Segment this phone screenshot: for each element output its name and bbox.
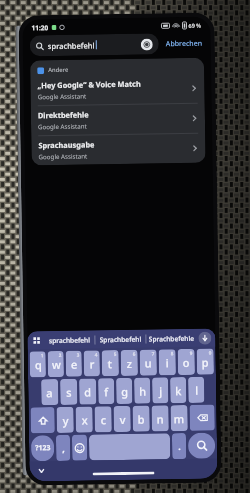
- staticText: 6: [133, 351, 136, 357]
- staticText: u: [145, 355, 152, 371]
- button[interactable]: b: [132, 406, 150, 432]
- staticText: c: [101, 412, 107, 427]
- button[interactable]: Direktbefehle: [31, 104, 205, 136]
- staticText: 8: [171, 350, 174, 356]
- button[interactable]: v: [113, 406, 131, 432]
- staticText: h: [139, 384, 146, 399]
- staticText: 0: [209, 350, 212, 356]
- staticText: sprachbefehl: [48, 335, 90, 345]
- staticText: v: [120, 412, 126, 427]
- button[interactable]: Spracheingabe: [141, 38, 153, 51]
- staticText: Google Assistant: [37, 91, 87, 100]
- staticText: 69 %: [188, 22, 201, 29]
- staticText: y: [63, 413, 69, 428]
- staticText: f: [104, 384, 108, 399]
- button[interactable]: r: [84, 350, 100, 376]
- staticText: p: [202, 355, 209, 370]
- button[interactable]: Suchen: [188, 432, 215, 459]
- staticText: s: [66, 385, 72, 400]
- button[interactable]: o: [178, 349, 195, 375]
- button[interactable]: ,: [56, 435, 70, 461]
- staticText: 11:20: [31, 23, 48, 32]
- button[interactable]: e: [66, 351, 82, 377]
- button[interactable]: k: [170, 377, 186, 403]
- staticText: a: [46, 385, 53, 400]
- staticText: Abbrechen: [166, 39, 203, 49]
- button[interactable]: Sprachbefehle: [146, 329, 197, 348]
- button[interactable]: i: [159, 349, 176, 375]
- button[interactable]: m: [170, 405, 188, 431]
- staticText: t: [108, 356, 113, 371]
- staticText: .: [178, 440, 181, 452]
- staticText: i: [166, 355, 169, 370]
- button[interactable]: Leertaste: [89, 433, 170, 460]
- button[interactable]: p: [197, 348, 214, 375]
- staticText: Google Assistant: [38, 151, 88, 160]
- staticText: d: [84, 384, 91, 400]
- staticText: 9: [190, 350, 193, 356]
- staticText: k: [175, 383, 182, 398]
- staticText: Google Assistant: [38, 121, 87, 130]
- button[interactable]: sprachbefehl: [44, 330, 95, 349]
- button[interactable]: n: [151, 405, 169, 432]
- button[interactable]: l: [188, 377, 204, 403]
- button[interactable]: Emoji: [72, 434, 87, 461]
- staticText: ,: [62, 442, 65, 454]
- staticText: Direktbefehle: [38, 109, 89, 120]
- staticText: „Hey Google“ & Voice Match: [37, 79, 141, 90]
- staticText: o: [183, 355, 190, 370]
- button[interactable]: a: [41, 379, 58, 405]
- staticText: 4: [95, 351, 98, 357]
- button[interactable]: y: [56, 407, 74, 433]
- staticText: sprachbefehl: [48, 40, 95, 51]
- staticText: m: [174, 411, 185, 426]
- button[interactable]: ?123: [31, 435, 54, 461]
- staticText: 7: [152, 350, 155, 356]
- button[interactable]: sprachbefehl: [30, 33, 159, 56]
- button[interactable]: d: [79, 378, 96, 405]
- button[interactable]: h: [134, 377, 150, 404]
- staticText: x: [82, 412, 88, 428]
- staticText: r: [90, 356, 95, 371]
- button[interactable]: f: [98, 378, 114, 404]
- button[interactable]: Sprachausgabe: [31, 134, 206, 165]
- button[interactable]: c: [94, 406, 112, 432]
- staticText: 1: [41, 352, 44, 358]
- staticText: 2: [59, 352, 62, 358]
- staticText: 5: [114, 351, 117, 357]
- staticText: z: [127, 356, 133, 371]
- staticText: b: [138, 412, 145, 427]
- staticText: n: [157, 411, 164, 426]
- button[interactable]: w: [48, 351, 64, 377]
- staticText: Sprachausgabe: [38, 139, 95, 150]
- button[interactable]: s: [60, 379, 77, 405]
- button[interactable]: Menü: [31, 335, 42, 346]
- staticText: j: [159, 383, 162, 398]
- button[interactable]: Löschen: [189, 404, 215, 431]
- button[interactable]: Umschalten: [30, 407, 55, 433]
- button[interactable]: q: [30, 351, 46, 377]
- staticText: w: [52, 357, 61, 372]
- staticText: 3: [77, 352, 80, 358]
- staticText: Sprachbefehl: [99, 335, 141, 344]
- button[interactable]: Abbrechen: [163, 36, 206, 52]
- button[interactable]: .: [172, 433, 186, 459]
- staticText: g: [121, 384, 128, 399]
- staticText: q: [35, 357, 42, 372]
- button[interactable]: g: [116, 378, 132, 404]
- button[interactable]: Sprachbefehl: [95, 330, 146, 348]
- staticText: Sprachbefehle: [148, 334, 194, 343]
- button[interactable]: x: [75, 406, 93, 433]
- button[interactable]: u: [140, 349, 157, 376]
- button[interactable]: t: [102, 350, 119, 376]
- staticText: Andere: [48, 66, 69, 74]
- button[interactable]: z: [121, 350, 138, 376]
- staticText: l: [195, 383, 198, 398]
- button[interactable]: Mehr Vorschläge: [198, 332, 211, 345]
- button[interactable]: „Hey Google“ & Voice Match: [30, 74, 205, 106]
- staticText: ?123: [35, 443, 51, 453]
- staticText: e: [71, 357, 78, 372]
- button[interactable]: Tastatur ausblenden: [35, 465, 48, 477]
- button[interactable]: j: [152, 377, 168, 403]
